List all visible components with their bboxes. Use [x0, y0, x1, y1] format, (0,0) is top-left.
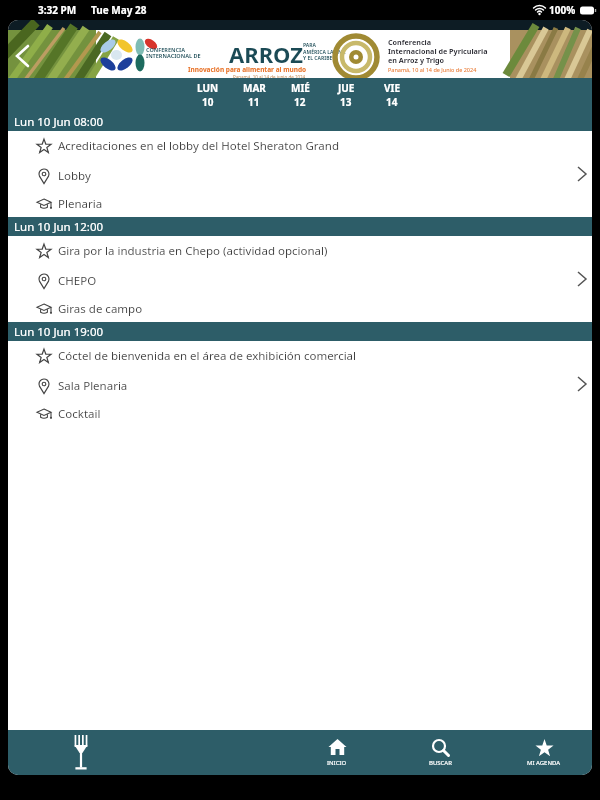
staticText: Tue May 28: [91, 3, 147, 17]
staticText: Innovación para alimentar al mundo: [188, 65, 307, 74]
staticText: Conferencia Internacional de Pyricularia…: [388, 37, 488, 65]
button[interactable]: [59, 730, 103, 775]
staticText: BUSCAR: [429, 759, 452, 767]
staticText: Plenaria: [58, 196, 103, 212]
staticText: Lun 10 Jun 12:00: [14, 219, 104, 235]
button[interactable]: VIE: [369, 78, 415, 112]
staticText: Lun 10 Jun 19:00: [14, 324, 104, 340]
staticText: JUE: [338, 81, 355, 95]
button[interactable]: LUN: [185, 78, 231, 112]
staticText: 3:32 PM: [38, 3, 77, 17]
staticText: Panamá, 10 al 14 de junio de 2024: [233, 74, 306, 80]
button[interactable]: MAR: [231, 78, 277, 112]
staticText: Lun 10 Jun 08:00: [14, 114, 104, 130]
staticText: MI AGENDA: [527, 759, 561, 767]
staticText: CHEPO: [58, 273, 97, 289]
staticText: 11: [248, 95, 260, 109]
staticText: MIÉ: [291, 81, 310, 95]
button[interactable]: Acreditaciones en el lobby del Hotel She…: [8, 131, 592, 217]
staticText: MAR: [243, 81, 266, 95]
button[interactable]: MIÉ: [277, 78, 323, 112]
staticText: Cóctel de bienvenida en el área de exhib…: [58, 348, 357, 364]
staticText: ARROZ: [229, 39, 304, 69]
staticText: Sala Plenaria: [58, 378, 128, 394]
staticText: VIE: [384, 81, 400, 95]
staticText: LUN: [197, 81, 219, 95]
button[interactable]: Cóctel de bienvenida en el área de exhib…: [8, 341, 592, 427]
staticText: INICIO: [327, 759, 347, 767]
button[interactable]: Gira por la industria en Chepo (activida…: [8, 236, 592, 322]
staticText: Acreditaciones en el lobby del Hotel She…: [58, 138, 339, 154]
staticText: 12: [294, 95, 306, 109]
staticText: 100%: [549, 3, 576, 17]
staticText: Lobby: [58, 168, 91, 184]
staticText: PARA AMÉRICA LATINA Y EL CARIBE: [303, 42, 346, 61]
staticText: 10: [202, 95, 214, 109]
button[interactable]: BUSCAR: [413, 730, 467, 775]
staticText: Panamá, 10 al 14 de Junio de 2024: [388, 66, 477, 73]
staticText: Giras de campo: [58, 301, 143, 317]
staticText: 13: [340, 95, 352, 109]
staticText: Gira por la industria en Chepo (activida…: [58, 243, 328, 259]
button[interactable]: [8, 30, 40, 78]
staticText: 14: [386, 95, 398, 109]
button[interactable]: MI AGENDA: [517, 730, 571, 775]
staticText: Cocktail: [58, 406, 101, 422]
button[interactable]: INICIO: [310, 730, 364, 775]
staticText: CONFERENCIA INTERNACIONAL DE: [146, 46, 201, 60]
button[interactable]: JUE: [323, 78, 369, 112]
